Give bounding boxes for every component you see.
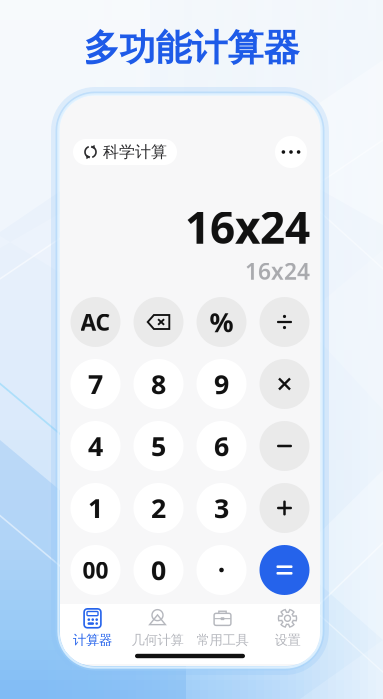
- staticText: 多功能计算器: [83, 26, 299, 70]
- button[interactable]: [196, 545, 246, 595]
- staticText: 8: [151, 366, 166, 402]
- button[interactable]: 5: [133, 421, 183, 471]
- staticText: 7: [88, 366, 103, 402]
- button[interactable]: 几何计算: [125, 604, 190, 652]
- button[interactable]: [259, 297, 309, 347]
- staticText: 几何计算: [131, 632, 183, 648]
- button[interactable]: 9: [196, 359, 246, 409]
- button[interactable]: [259, 483, 309, 533]
- button[interactable]: 4: [70, 421, 120, 471]
- staticText: 16x24: [185, 197, 310, 256]
- staticText: 4: [88, 428, 103, 464]
- button[interactable]: %: [196, 297, 246, 347]
- staticText: 计算器: [73, 632, 112, 648]
- button[interactable]: AC: [70, 297, 120, 347]
- button[interactable]: 00: [70, 545, 120, 595]
- button[interactable]: [133, 297, 183, 347]
- button[interactable]: 计算器: [60, 604, 125, 652]
- staticText: 6: [214, 428, 229, 464]
- button[interactable]: 3: [196, 483, 246, 533]
- staticText: 9: [214, 366, 229, 402]
- staticText: 16x24: [245, 256, 310, 286]
- staticText: 5: [151, 428, 166, 464]
- button[interactable]: 1: [70, 483, 120, 533]
- button[interactable]: 设置: [255, 604, 320, 652]
- button[interactable]: [259, 421, 309, 471]
- staticText: %: [209, 304, 233, 340]
- staticText: 00: [82, 555, 108, 585]
- staticText: 2: [151, 490, 166, 526]
- staticText: 科学计算: [103, 142, 167, 162]
- button[interactable]: 科学计算: [73, 139, 177, 165]
- staticText: 3: [214, 490, 229, 526]
- button[interactable]: 8: [133, 359, 183, 409]
- button[interactable]: [259, 359, 309, 409]
- button[interactable]: 0: [133, 545, 183, 595]
- staticText: AC: [80, 307, 110, 337]
- button[interactable]: 常用工具: [190, 604, 255, 652]
- button[interactable]: [259, 545, 309, 595]
- staticText: 设置: [274, 632, 300, 648]
- staticText: 1: [88, 490, 103, 526]
- button[interactable]: 7: [70, 359, 120, 409]
- staticText: 0: [151, 552, 166, 588]
- button[interactable]: 2: [133, 483, 183, 533]
- staticText: 常用工具: [196, 632, 248, 648]
- button[interactable]: More options: [275, 136, 307, 168]
- button[interactable]: 6: [196, 421, 246, 471]
